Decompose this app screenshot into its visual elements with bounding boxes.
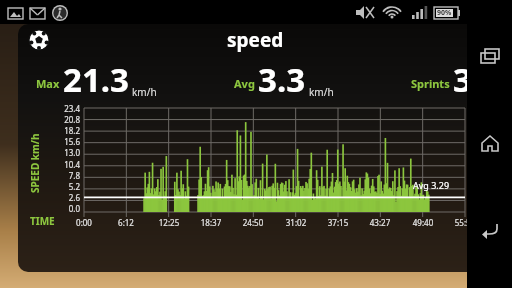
staticText: 49:40 (407, 217, 439, 228)
staticText: 6:12 (110, 217, 142, 228)
staticText: 12:25 (153, 217, 185, 228)
staticText: Avg 3.29 (413, 179, 450, 191)
button[interactable]: Home (470, 124, 510, 164)
button[interactable]: Sprints (411, 57, 472, 104)
staticText: speed (227, 27, 284, 53)
button[interactable]: Sport (18, 24, 492, 56)
staticText: 3 (453, 57, 472, 102)
button[interactable] (84, 104, 465, 272)
staticText: 0.0 (52, 203, 80, 214)
button[interactable]: Back (470, 210, 510, 250)
staticText: 90% (437, 8, 452, 18)
staticText: 10.4 (52, 159, 80, 170)
staticText: km/h (309, 85, 334, 99)
button[interactable]: Avg (234, 57, 334, 104)
staticText: TIME (30, 214, 55, 228)
button[interactable]: Max (36, 57, 157, 104)
button[interactable]: Sport (28, 29, 50, 51)
staticText: Sprints (411, 76, 450, 91)
staticText: Avg (234, 76, 255, 91)
staticText: 3.3 (258, 57, 306, 102)
staticText: 23.4 (52, 103, 80, 114)
staticText: 0:00 (68, 217, 100, 228)
staticText: 20.8 (52, 114, 80, 125)
staticText: 55:52 (449, 217, 481, 228)
staticText: 24:50 (237, 217, 269, 228)
staticText: SPEED km/h (28, 133, 42, 193)
staticText: 18.2 (52, 125, 80, 136)
button[interactable]: Recents (470, 38, 510, 78)
staticText: 21.3 (63, 57, 129, 102)
staticText: 13.0 (52, 147, 80, 158)
staticText: Max (36, 76, 60, 91)
staticText: 15.6 (52, 136, 80, 147)
staticText: 31:02 (280, 217, 312, 228)
staticText: km/h (132, 85, 157, 99)
staticText: 43:27 (364, 217, 396, 228)
staticText: 5.2 (52, 181, 80, 192)
staticText: 37:15 (322, 217, 354, 228)
staticText: 2.6 (52, 192, 80, 203)
staticText: 18:37 (195, 217, 227, 228)
staticText: 7.8 (52, 170, 80, 181)
